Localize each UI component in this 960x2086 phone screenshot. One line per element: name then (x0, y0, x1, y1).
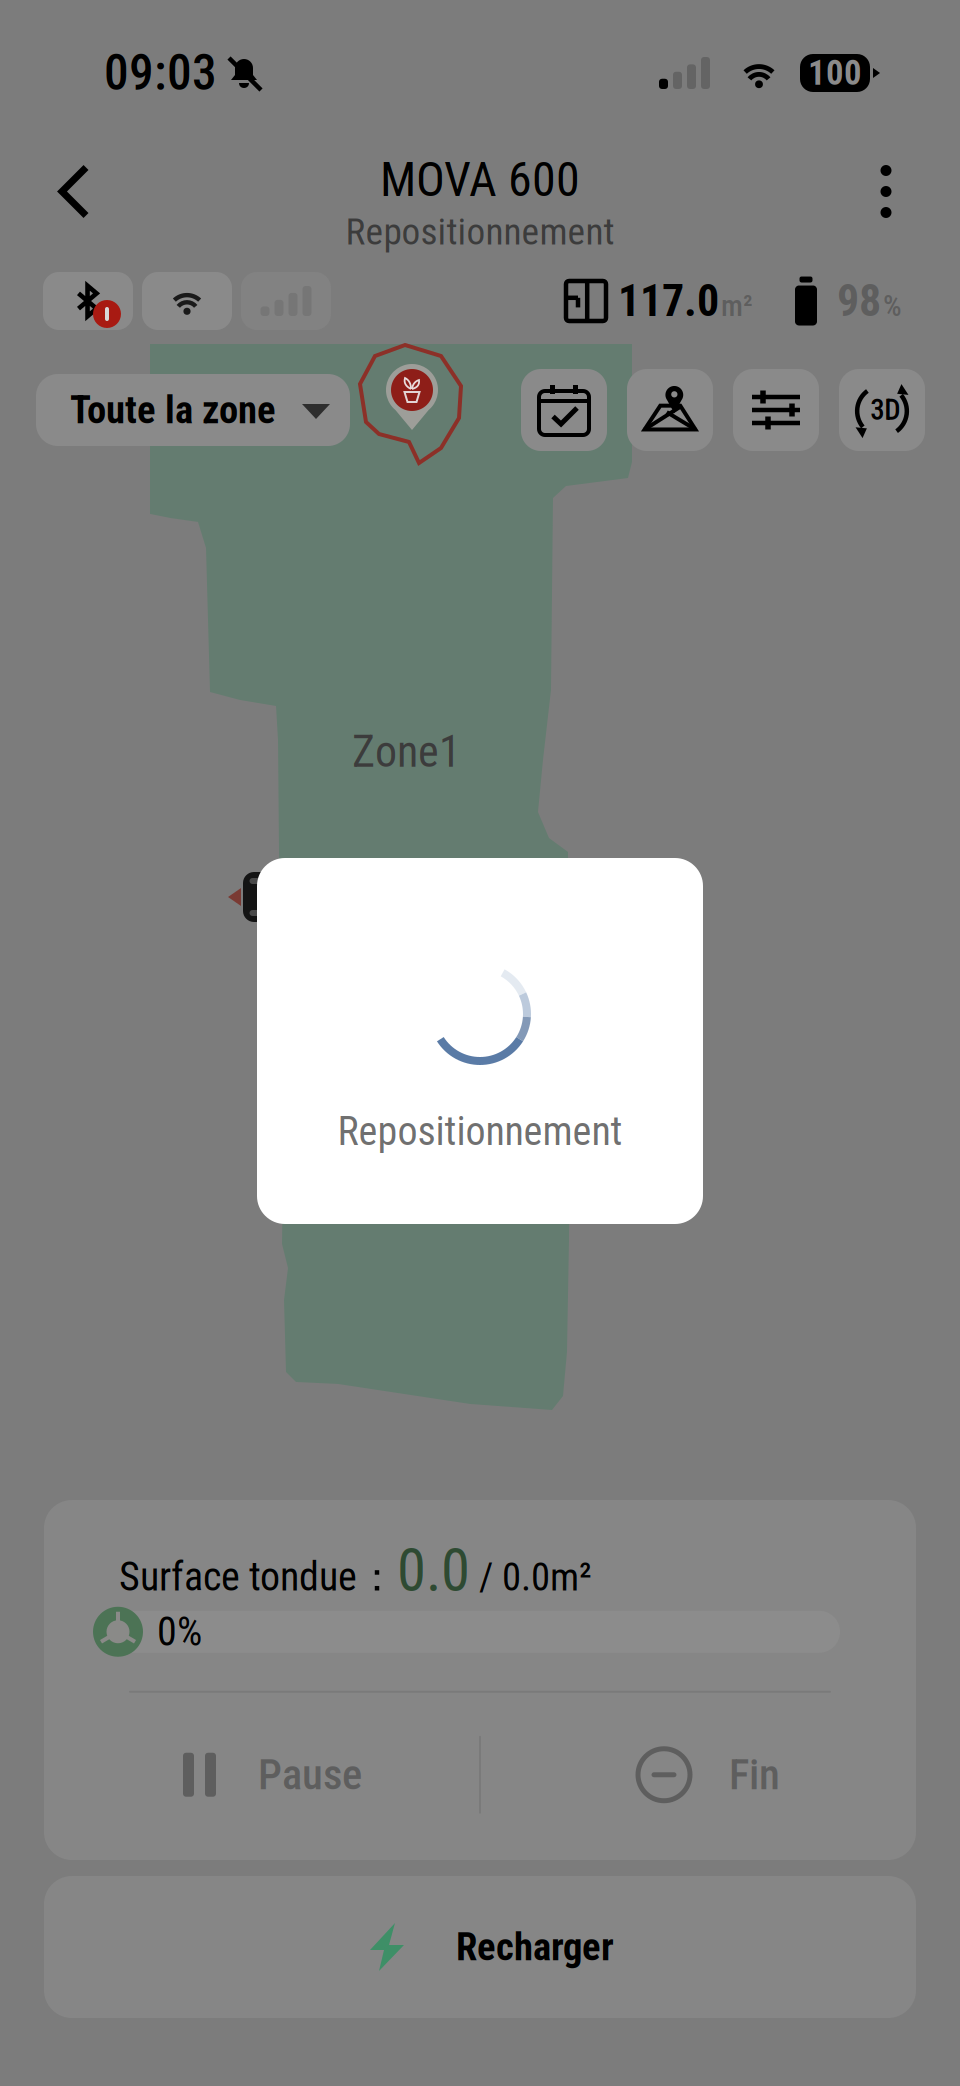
staticText: Repositionnement (345, 210, 614, 253)
button[interactable]: Map (627, 369, 713, 451)
staticText: 98 (837, 275, 881, 327)
staticText: Repositionnement (337, 1108, 622, 1155)
staticText: % (883, 289, 902, 323)
staticText: 0.0 (397, 1536, 470, 1605)
staticText: / 0.0m² (470, 1555, 592, 1600)
staticText: 09:03 (104, 44, 217, 102)
staticText: Fin (729, 1750, 780, 1800)
staticText: Pause (258, 1750, 362, 1800)
button[interactable]: Bluetooth not connected (43, 272, 133, 330)
staticText: m² (721, 289, 753, 323)
button[interactable]: Schedule (521, 369, 607, 451)
staticText: 0% (157, 1608, 202, 1655)
button[interactable]: Pause (44, 1717, 480, 1833)
button[interactable]: More options (836, 141, 936, 241)
staticText: Recharger (456, 1924, 614, 1970)
staticText: 3D (870, 393, 900, 427)
button[interactable]: Fin (480, 1717, 916, 1833)
staticText: Surface tondue： (119, 1552, 397, 1602)
button[interactable]: Settings (733, 369, 819, 451)
staticText: Toute la zone (70, 387, 276, 433)
staticText: MOVA 600 (380, 151, 580, 208)
button[interactable]: Toute la zone (36, 374, 350, 446)
staticText: 117.0 (618, 275, 719, 327)
button[interactable]: Recharger (44, 1876, 916, 2018)
button[interactable]: Back (24, 141, 124, 241)
button[interactable]: Wi-Fi (142, 272, 232, 330)
staticText: 100 (808, 53, 862, 93)
button[interactable]: 3D view (839, 369, 925, 451)
staticText: Zone1 (352, 726, 461, 778)
